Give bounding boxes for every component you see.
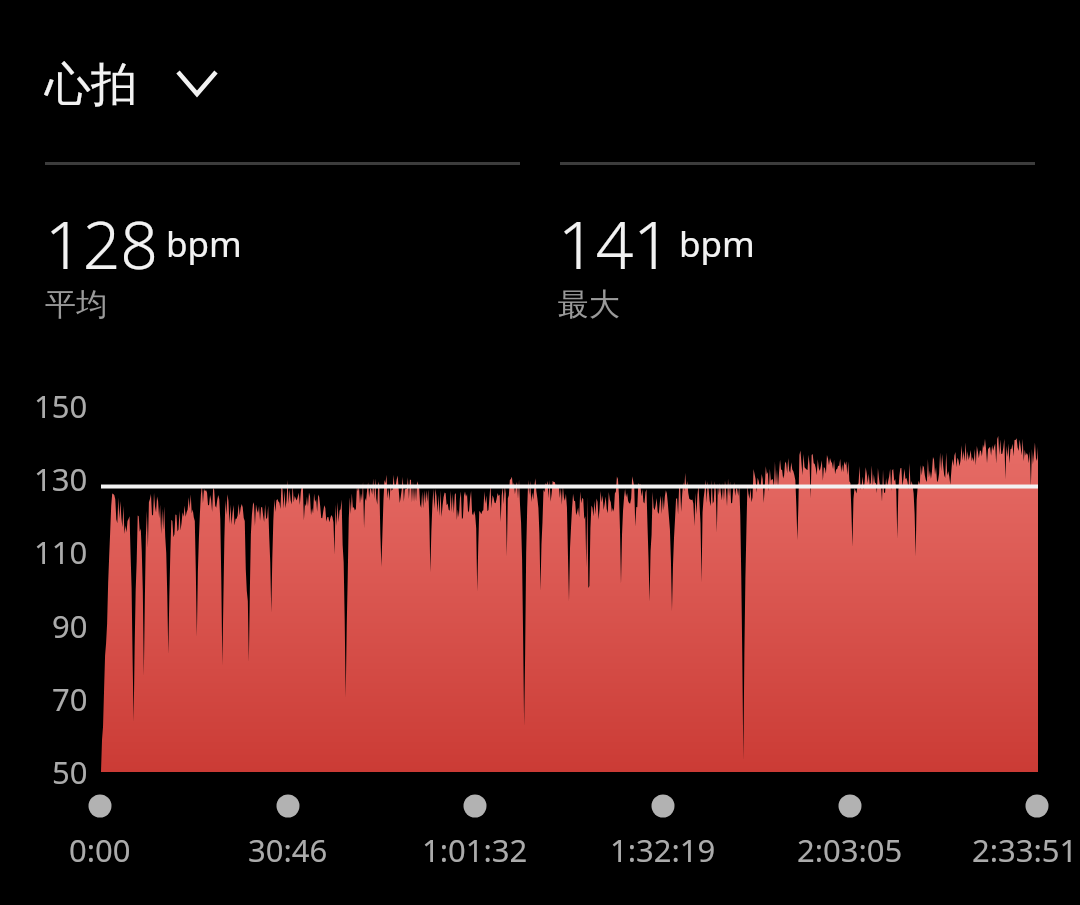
button[interactable]: 心拍 metric selector [30, 45, 230, 120]
button[interactable]: Heart rate chart [95, 380, 1045, 780]
